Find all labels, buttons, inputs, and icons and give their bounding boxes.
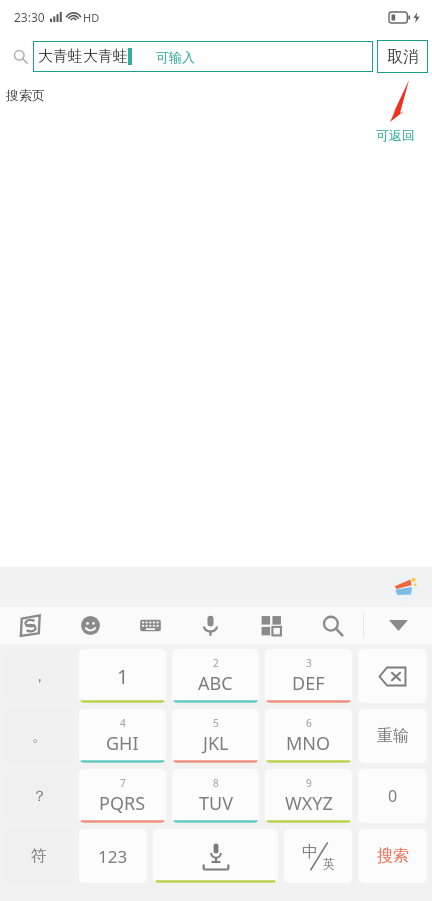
button[interactable]: 符 xyxy=(5,829,73,883)
button[interactable]: 7 xyxy=(79,769,166,823)
staticText: 符 xyxy=(31,846,47,866)
staticText: 23:30 xyxy=(14,9,45,25)
staticText: 英 xyxy=(323,856,335,871)
button[interactable]: ， xyxy=(5,649,73,703)
button[interactable]: 2 xyxy=(172,649,259,703)
staticText: 4 xyxy=(120,716,126,730)
button[interactable]: Sogou input xyxy=(0,607,60,644)
button[interactable]: Search xyxy=(302,607,363,644)
other: Sticker store xyxy=(391,574,418,601)
staticText: 0 xyxy=(388,785,398,807)
button[interactable]: 123 xyxy=(79,829,147,883)
button[interactable]: More panels xyxy=(241,607,302,644)
staticText: 2 xyxy=(213,656,219,670)
button[interactable]: 大青蛙大青蛙 xyxy=(33,41,373,72)
staticText: 可返回 xyxy=(376,127,415,143)
button[interactable]: ？ xyxy=(5,769,73,823)
staticText: 3 xyxy=(306,656,312,670)
staticText: 5 xyxy=(213,716,219,730)
staticText: PQRS xyxy=(99,791,146,816)
staticText: ， xyxy=(32,667,47,686)
staticText: 6 xyxy=(306,716,312,730)
button[interactable]: Voice input xyxy=(180,607,241,644)
staticText: 大青蛙大青蛙 xyxy=(38,47,128,66)
button[interactable]: 搜索 xyxy=(358,829,427,883)
staticText: 1 xyxy=(117,663,129,690)
button[interactable]: Switch Chinese English xyxy=(284,829,352,883)
staticText: 搜索 xyxy=(377,846,409,866)
staticText: WXYZ xyxy=(285,791,333,816)
button[interactable]: 重输 xyxy=(358,709,427,763)
button[interactable]: Emoji xyxy=(60,607,120,644)
staticText: ？ xyxy=(32,787,47,806)
staticText: 搜索页 xyxy=(6,87,45,103)
other: Search xyxy=(13,49,28,64)
staticText: HD xyxy=(83,10,100,25)
button[interactable]: 8 xyxy=(172,769,259,823)
button[interactable]: 9 xyxy=(265,769,352,823)
staticText: JKL xyxy=(203,731,229,756)
staticText: 可输入 xyxy=(156,49,195,65)
staticText: 中 xyxy=(302,842,318,862)
button[interactable]: Keyboard layout xyxy=(120,607,180,644)
staticText: 9 xyxy=(306,776,312,790)
button[interactable]: 6 xyxy=(265,709,352,763)
button[interactable]: 4 xyxy=(79,709,166,763)
staticText: GHI xyxy=(106,731,139,756)
staticText: DEF xyxy=(292,671,325,696)
staticText: 8 xyxy=(213,776,219,790)
button[interactable]: 取消 xyxy=(377,40,428,73)
staticText: TUV xyxy=(199,791,233,816)
button[interactable]: Space and voice input xyxy=(153,829,278,883)
button[interactable]: Backspace xyxy=(358,649,427,703)
button[interactable]: 0 xyxy=(358,769,427,823)
button[interactable]: 3 xyxy=(265,649,352,703)
staticText: 取消 xyxy=(387,47,419,67)
staticText: 123 xyxy=(98,845,128,868)
button[interactable]: Hide keyboard xyxy=(364,607,432,644)
staticText: MNO xyxy=(286,731,331,756)
staticText: 重输 xyxy=(377,726,409,746)
staticText: 7 xyxy=(120,776,126,790)
button[interactable]: 5 xyxy=(172,709,259,763)
button[interactable]: 1 xyxy=(79,649,166,703)
staticText: ABC xyxy=(198,671,233,696)
staticText: 。 xyxy=(32,727,47,746)
